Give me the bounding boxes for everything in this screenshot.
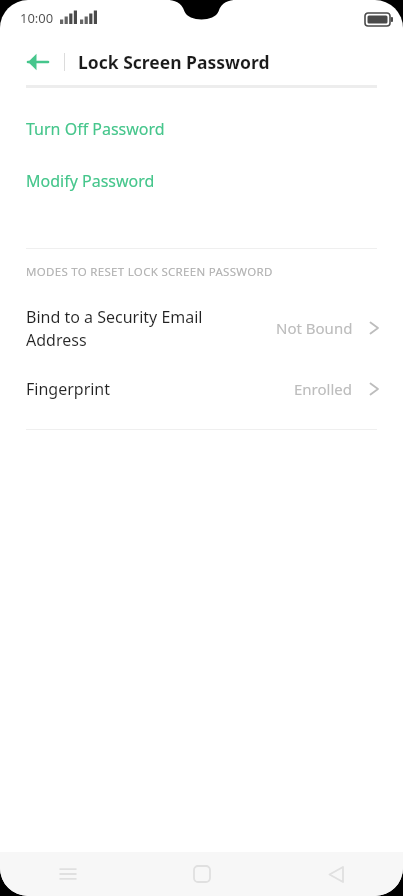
staticText: Enrolled	[294, 379, 353, 399]
button[interactable]: Modify Password	[0, 152, 403, 210]
staticText: Turn Off Password	[26, 118, 165, 140]
staticText: MODES TO RESET LOCK SCREEN PASSWORD	[26, 264, 273, 280]
staticText: Fingerprint	[26, 378, 111, 400]
button[interactable]: Fingerprint	[0, 361, 403, 417]
button[interactable]: Bind to a Security Email Address	[0, 295, 403, 361]
staticText: 10:00	[20, 9, 54, 27]
staticText: Modify Password	[26, 170, 155, 192]
button[interactable]: Back	[18, 42, 58, 82]
staticText: Lock Screen Password	[78, 50, 270, 74]
button[interactable]: Turn Off Password	[0, 106, 403, 152]
button[interactable]: Recents	[0, 852, 135, 896]
button[interactable]: Back	[269, 852, 403, 896]
staticText: Bind to a Security Email Address	[26, 306, 203, 351]
staticText: Not Bound	[276, 318, 353, 338]
